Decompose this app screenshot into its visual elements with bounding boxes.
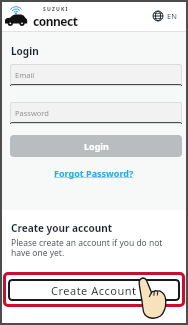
staticText: Please create an account if you do not h… bbox=[11, 237, 163, 259]
button[interactable]: EN bbox=[152, 10, 177, 22]
staticText: Login bbox=[84, 140, 109, 152]
staticText: Forgot Password? bbox=[54, 167, 134, 179]
staticText: connect bbox=[33, 13, 78, 29]
staticText: Password bbox=[15, 108, 49, 118]
staticText: SUZUKI bbox=[43, 6, 69, 13]
button[interactable]: Create Account bbox=[8, 279, 180, 301]
button[interactable]: Forgot Password? bbox=[52, 165, 136, 181]
button[interactable]: Login bbox=[10, 135, 182, 157]
staticText: Email bbox=[15, 70, 35, 80]
staticText: Create your account bbox=[11, 221, 112, 235]
staticText: EN bbox=[167, 11, 177, 21]
button[interactable]: Email bbox=[10, 64, 182, 86]
button[interactable]: Password bbox=[10, 102, 182, 124]
staticText: Create Account bbox=[51, 283, 137, 298]
staticText: Login bbox=[11, 44, 39, 58]
